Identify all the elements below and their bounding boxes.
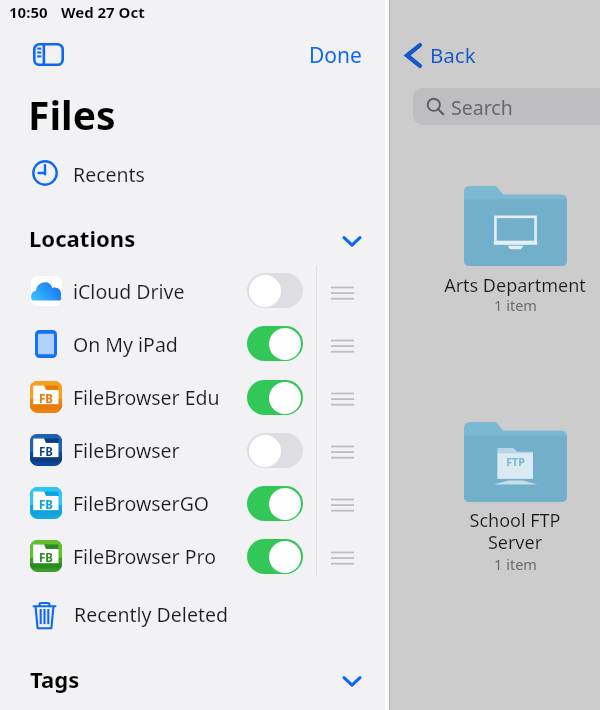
staticText: Wed 27 Oct xyxy=(61,2,145,22)
staticText: 1 item xyxy=(494,554,537,574)
staticText: Arts Department xyxy=(444,273,586,298)
button[interactable] xyxy=(0,477,389,529)
button[interactable]: Enabled xyxy=(247,326,303,361)
staticText: Files xyxy=(28,88,116,141)
staticText: FileBrowser xyxy=(73,437,180,464)
button[interactable] xyxy=(0,318,389,370)
button[interactable]: Disabled xyxy=(247,433,303,468)
other: Reorder xyxy=(331,444,354,459)
staticText: Done xyxy=(309,41,362,70)
button[interactable]: Toggle sidebar xyxy=(22,34,74,74)
staticText: FB xyxy=(39,391,53,407)
staticText: FB xyxy=(39,444,53,460)
staticText: FB xyxy=(39,550,53,566)
button[interactable]: Search xyxy=(413,88,600,125)
staticText: FileBrowserGO xyxy=(73,490,210,517)
button[interactable] xyxy=(0,265,389,317)
staticText: Tags xyxy=(30,664,80,694)
button[interactable] xyxy=(0,151,389,195)
staticText: iCloud Drive xyxy=(73,278,185,305)
staticText: On My iPad xyxy=(73,331,178,358)
button[interactable]: FTP xyxy=(425,418,600,576)
button[interactable] xyxy=(0,659,389,699)
button[interactable]: Back xyxy=(398,36,484,74)
other: Reorder xyxy=(331,285,354,300)
other: Reorder xyxy=(331,338,354,353)
staticText: School FTP Server xyxy=(425,508,600,555)
button[interactable] xyxy=(0,218,389,258)
button[interactable] xyxy=(0,371,389,423)
staticText: Search xyxy=(451,94,513,121)
staticText: Recents xyxy=(73,161,145,188)
button[interactable] xyxy=(0,424,389,476)
staticText: 10:50 xyxy=(9,2,48,22)
button[interactable]: Arts Department xyxy=(425,182,600,314)
button[interactable] xyxy=(0,591,389,635)
other: Reorder xyxy=(331,550,354,565)
button[interactable]: Disabled xyxy=(247,273,303,308)
button[interactable] xyxy=(0,530,389,582)
staticText: Locations xyxy=(29,223,136,253)
staticText: FileBrowser Edu xyxy=(73,384,220,411)
button[interactable]: Enabled xyxy=(247,486,303,521)
button[interactable]: Done xyxy=(300,38,368,68)
staticText: 1 item xyxy=(494,295,537,315)
other: Reorder xyxy=(331,391,354,406)
staticText: FTP xyxy=(506,455,525,469)
button[interactable]: Enabled xyxy=(247,380,303,415)
staticText: FileBrowser Pro xyxy=(73,543,216,570)
button[interactable]: Enabled xyxy=(247,539,303,574)
staticText: FB xyxy=(39,497,53,513)
staticText: Recently Deleted xyxy=(74,601,228,628)
other: Reorder xyxy=(331,497,354,512)
staticText: Back xyxy=(430,41,476,69)
